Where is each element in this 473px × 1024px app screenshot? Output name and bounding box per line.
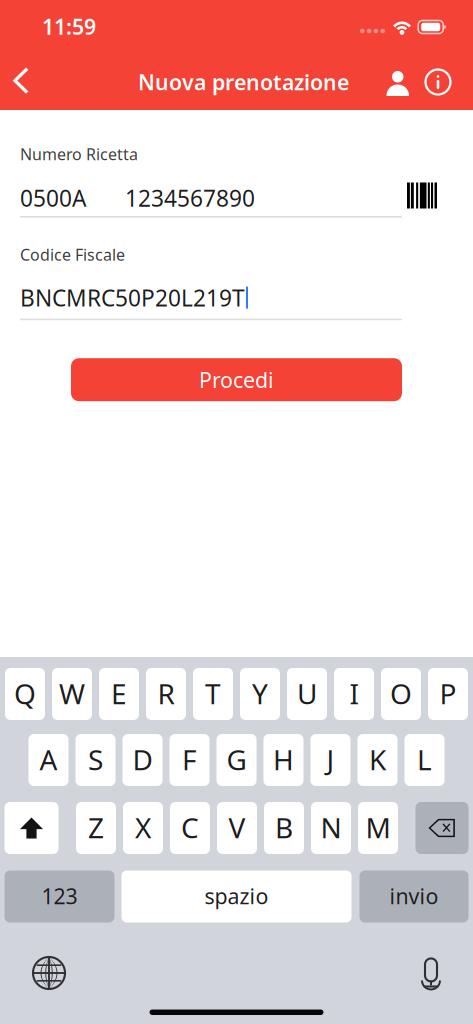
button[interactable]: B — [264, 802, 304, 854]
button[interactable]: V — [217, 802, 257, 854]
staticText: Codice Fiscale — [20, 244, 125, 265]
staticText: Y — [252, 675, 268, 712]
staticText: 0500A — [20, 183, 86, 213]
button[interactable]: H — [263, 734, 303, 786]
staticText: L — [417, 741, 432, 778]
button[interactable]: S — [75, 734, 115, 786]
staticText: I — [349, 675, 358, 712]
staticText: Numero Ricetta — [20, 143, 138, 165]
button[interactable]: Z — [76, 802, 116, 854]
button[interactable]: I — [334, 668, 374, 720]
button[interactable]: T — [193, 668, 233, 720]
button[interactable]: N — [311, 802, 351, 854]
staticText: 1234567890 — [125, 183, 255, 213]
staticText: 123 — [41, 882, 77, 910]
button[interactable]: Dettatura — [405, 947, 457, 999]
staticText: spazio — [204, 882, 268, 910]
button[interactable]: G — [216, 734, 256, 786]
staticText: Q — [14, 675, 36, 712]
staticText: V — [228, 809, 245, 846]
staticText: Procedi — [199, 365, 274, 394]
button[interactable]: invio — [359, 870, 468, 922]
button[interactable]: X — [123, 802, 163, 854]
staticText: N — [320, 809, 341, 846]
button[interactable]: C — [170, 802, 210, 854]
button[interactable]: O — [381, 668, 421, 720]
staticText: invio — [389, 882, 438, 910]
staticText: T — [205, 675, 221, 712]
staticText: P — [439, 675, 456, 712]
button[interactable]: 123 — [4, 870, 114, 922]
button[interactable]: K — [357, 734, 397, 786]
button[interactable]: Procedi — [71, 358, 402, 401]
staticText: A — [39, 741, 57, 778]
button[interactable]: Maiuscole — [4, 802, 58, 854]
button[interactable]: Cancella — [415, 802, 468, 854]
staticText: J — [326, 741, 334, 778]
button[interactable]: W — [52, 668, 92, 720]
staticText: Nuova prenotazione — [138, 68, 349, 96]
staticText: E — [111, 675, 127, 712]
button[interactable]: Y — [240, 668, 280, 720]
staticText: K — [369, 741, 386, 778]
staticText: B — [275, 809, 293, 846]
button[interactable]: Q — [5, 668, 45, 720]
button[interactable]: R — [146, 668, 186, 720]
staticText: F — [182, 741, 197, 778]
staticText: G — [226, 741, 246, 778]
button[interactable]: P — [428, 668, 468, 720]
staticText: Z — [88, 809, 104, 846]
button[interactable]: L — [404, 734, 444, 786]
staticText: X — [135, 809, 151, 846]
staticText: M — [365, 809, 390, 846]
button[interactable]: E — [99, 668, 139, 720]
button[interactable]: F — [169, 734, 209, 786]
button[interactable]: A — [28, 734, 68, 786]
staticText: 11:59 — [42, 12, 96, 41]
staticText: U — [297, 675, 317, 712]
staticText: C — [181, 809, 199, 846]
staticText: S — [88, 741, 103, 778]
button[interactable]: D — [122, 734, 162, 786]
staticText: W — [59, 675, 85, 712]
button[interactable]: Profilo — [363, 50, 416, 111]
button[interactable]: J — [310, 734, 350, 786]
staticText: H — [273, 741, 294, 778]
button[interactable]: U — [287, 668, 327, 720]
staticText: BNCMRC50P20L219T — [20, 282, 245, 313]
button[interactable]: Indietro — [0, 53, 56, 109]
staticText: R — [157, 675, 174, 712]
button[interactable]: Informazioni — [416, 52, 460, 110]
button[interactable]: spazio — [121, 870, 351, 922]
staticText: D — [132, 741, 152, 778]
staticText: O — [390, 675, 412, 712]
button[interactable]: M — [358, 802, 398, 854]
button[interactable]: Cambia tastiera — [23, 947, 75, 999]
